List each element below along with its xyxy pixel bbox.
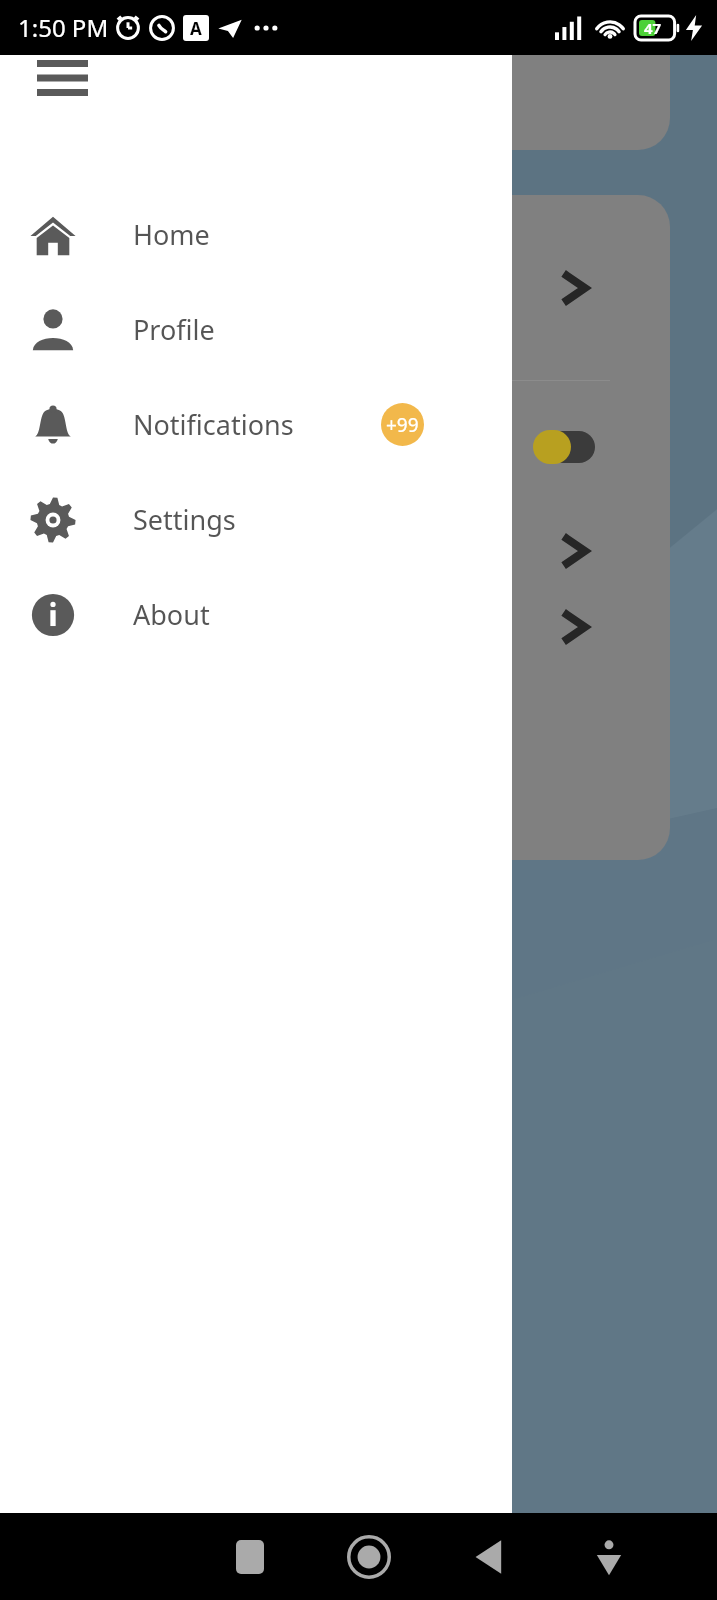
staticText: Home [133,216,210,253]
button[interactable]: Open navigation menu [30,73,90,133]
button[interactable]: Hide navigation bar [549,1513,669,1600]
staticText: 1:50 PM [18,11,109,44]
button[interactable]: Home [309,1513,429,1600]
staticText: About [133,596,210,633]
button[interactable]: Settings [0,472,512,567]
button[interactable]: Back [429,1513,549,1600]
button[interactable]: About [0,567,512,662]
button[interactable]: Notifications [0,377,512,472]
button[interactable] [0,589,670,665]
staticText: Settings [133,501,236,538]
button[interactable] [0,513,670,589]
staticText: Notifications [133,406,294,443]
staticText: 47 [644,18,662,38]
button[interactable]: Profile [0,282,512,377]
button[interactable]: Home [0,187,512,282]
button[interactable]: Recent apps [190,1513,309,1600]
staticText: A [190,17,202,40]
button[interactable]: Close navigation menu [24,40,100,116]
button[interactable] [0,195,670,380]
button[interactable] [0,381,670,513]
staticText: +99 [386,412,419,438]
staticText: Profile [133,311,215,348]
